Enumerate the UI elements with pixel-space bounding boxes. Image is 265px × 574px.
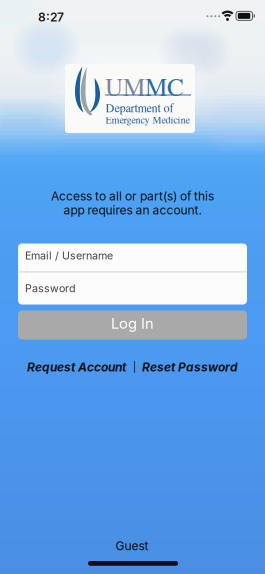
button[interactable]: Email / Username — [18, 243, 247, 271]
button[interactable]: Password — [18, 272, 247, 304]
staticText: UM — [105, 69, 145, 103]
staticText: app requires an account. — [63, 203, 201, 217]
staticText: Guest — [115, 539, 148, 553]
staticText: Password — [25, 282, 76, 295]
staticText: Emergency Medicine — [105, 113, 189, 126]
staticText: Access to all or part(s) of this — [51, 189, 214, 203]
staticText: 8:27 — [38, 10, 64, 24]
staticText: Email / Username — [25, 249, 113, 262]
button[interactable]: Guest — [102, 538, 162, 554]
staticText: Department of — [105, 99, 173, 115]
button[interactable]: Log In — [18, 310, 247, 339]
button[interactable]: Request Account — [27, 360, 126, 374]
staticText: Reset Password — [142, 360, 238, 374]
staticText: Request Account — [27, 360, 126, 374]
staticText: Log In — [111, 315, 154, 332]
button[interactable]: Reset Password — [142, 360, 238, 374]
staticText: MC — [145, 69, 184, 103]
